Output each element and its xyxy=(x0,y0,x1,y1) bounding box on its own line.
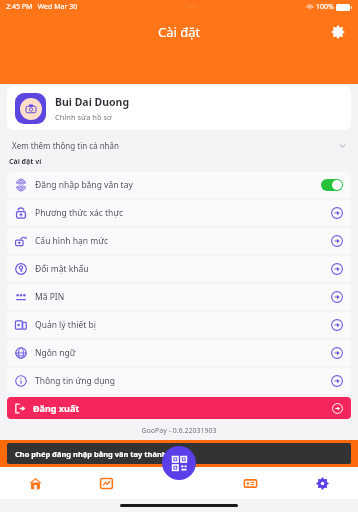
staticText: Xem thêm thông tin cá nhân xyxy=(12,140,119,151)
staticText: Chỉnh sửa hồ sơ xyxy=(55,112,112,122)
button[interactable]: Statistics xyxy=(71,467,142,499)
staticText: • • • xyxy=(187,3,197,11)
staticText: Bui Dai Duong xyxy=(55,95,130,109)
button[interactable]: Cấu hình hạn mức xyxy=(7,228,351,254)
button[interactable]: Đăng nhập bằng vân tay xyxy=(7,172,351,198)
button[interactable]: Home xyxy=(0,467,71,499)
staticText: Cài đặt xyxy=(158,23,201,41)
staticText: Mã PIN xyxy=(35,291,65,303)
staticText: 2:45 PM Wed Mar 30 xyxy=(6,2,78,12)
staticText: Quản lý thiết bị xyxy=(35,319,96,331)
button[interactable]: Bui Dai Duong xyxy=(7,86,351,130)
button[interactable]: Phương thức xác thực xyxy=(7,200,351,226)
staticText: Đăng nhập bằng vân tay xyxy=(35,179,133,191)
staticText: Đổi mật khẩu xyxy=(35,263,89,275)
button[interactable]: Đăng xuất xyxy=(7,397,351,419)
staticText: 100% xyxy=(316,2,334,12)
staticText: Phương thức xác thực xyxy=(35,207,124,219)
button[interactable]: Quản lý thiết bị xyxy=(7,312,351,338)
staticText: Đăng xuất xyxy=(33,402,80,414)
staticText: Cấu hình hạn mức xyxy=(35,235,109,247)
button[interactable]: Settings xyxy=(286,467,358,499)
button[interactable]: Cards xyxy=(214,467,286,499)
staticText: Ngôn ngữ xyxy=(35,347,76,359)
staticText: Cài đặt ví xyxy=(9,157,42,167)
staticText: Cho phép đăng nhập bằng vân tay thành cô… xyxy=(15,449,187,459)
button[interactable]: Đổi mật khẩu xyxy=(7,256,351,282)
staticText: GooPay - 0.6.22031903 xyxy=(0,426,358,436)
button[interactable]: Scan QR code xyxy=(162,446,196,480)
button[interactable]: Thông tin ứng dụng xyxy=(7,368,351,394)
button[interactable]: Mã PIN xyxy=(7,284,351,310)
button[interactable]: Settings xyxy=(326,20,350,44)
button[interactable]: Xem thêm thông tin cá nhân xyxy=(7,137,351,153)
button[interactable]: Ngôn ngữ xyxy=(7,340,351,366)
staticText: Thông tin ứng dụng xyxy=(35,375,115,387)
